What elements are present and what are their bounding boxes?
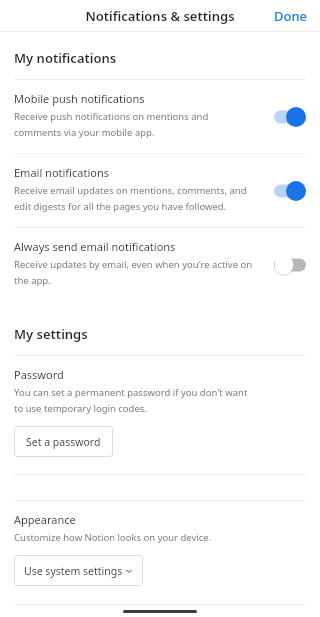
- staticText: Appearance: [14, 512, 76, 527]
- button[interactable]: Toggle off: [274, 255, 306, 275]
- button[interactable]: Toggle on: [274, 181, 306, 201]
- button[interactable]: Email notifications: [0, 154, 320, 227]
- button[interactable]: Toggle on: [274, 107, 306, 127]
- staticText: Email notifications: [14, 165, 109, 180]
- staticText: to use temporary login codes.: [14, 402, 147, 415]
- staticText: Customize how Notion looks on your devic…: [14, 531, 212, 544]
- staticText: Password: [14, 367, 64, 382]
- staticText: Receive push notifications on mentions a…: [14, 110, 209, 123]
- staticText: Use system settings: [24, 564, 123, 578]
- staticText: My notifications: [14, 49, 117, 67]
- staticText: Done: [274, 7, 308, 25]
- staticText: the app.: [14, 274, 51, 287]
- staticText: My settings: [14, 325, 88, 343]
- staticText: You can set a permanent password if you …: [14, 386, 248, 399]
- staticText: Mobile push notifications: [14, 91, 145, 106]
- button[interactable]: Mobile push notifications: [0, 80, 320, 153]
- button[interactable]: Done: [262, 0, 320, 32]
- staticText: comments via your mobile app.: [14, 126, 155, 139]
- staticText: Receive email updates on mentions, comme…: [14, 184, 247, 197]
- staticText: Always send email notifications: [14, 239, 176, 254]
- button[interactable]: Set a password: [14, 426, 113, 457]
- button[interactable]: Always send email notifications: [0, 228, 320, 301]
- button[interactable]: Use system settings: [14, 555, 143, 586]
- staticText: Set a password: [26, 435, 101, 449]
- staticText: Receive updates by email, even when you'…: [14, 258, 253, 271]
- staticText: Notifications & settings: [0, 7, 320, 25]
- staticText: edit digests for all the pages you have …: [14, 200, 227, 213]
